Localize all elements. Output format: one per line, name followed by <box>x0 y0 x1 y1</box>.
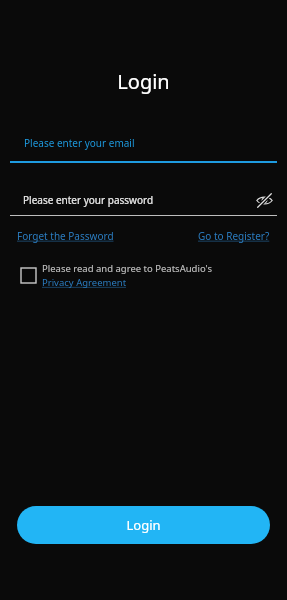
staticText: Privacy Agreement <box>42 276 127 289</box>
staticText: Login <box>117 68 170 95</box>
button[interactable]: Privacy Agreement <box>42 276 127 289</box>
button[interactable]: Go to Register? <box>198 227 270 245</box>
button[interactable]: Please enter your email <box>10 125 277 161</box>
button[interactable]: Login <box>17 506 270 544</box>
button[interactable]: Show password <box>251 187 277 213</box>
button[interactable]: Please enter your password <box>10 193 251 207</box>
staticText: Go to Register? <box>198 229 270 243</box>
staticText: Login <box>126 516 161 534</box>
staticText: Please enter your email <box>24 136 135 150</box>
staticText: Forget the Password <box>17 229 114 243</box>
button[interactable]: Forget the Password <box>17 227 114 245</box>
button[interactable]: Agree to privacy agreement <box>21 268 36 283</box>
staticText: Please read and agree to PeatsAudio's <box>42 262 212 275</box>
staticText: Please enter your password <box>23 193 154 207</box>
